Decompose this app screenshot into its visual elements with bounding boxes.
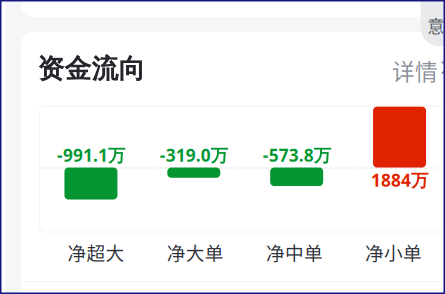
staticText: 净小单 (365, 238, 422, 265)
staticText: 资金流向 (37, 52, 145, 86)
staticText: -991.1万 (57, 143, 125, 167)
button[interactable]: 详情 (392, 52, 445, 80)
staticText: -573.8万 (263, 143, 331, 167)
staticText: 净大单 (167, 238, 224, 265)
button[interactable]: 意见反馈 (421, 0, 445, 46)
staticText: 详情 (392, 54, 438, 87)
staticText: 净中单 (266, 238, 323, 265)
staticText: -319.0万 (160, 143, 228, 167)
staticText: 1884万 (371, 168, 428, 192)
staticText: 意 (427, 12, 444, 38)
staticText: 净超大 (67, 238, 124, 265)
